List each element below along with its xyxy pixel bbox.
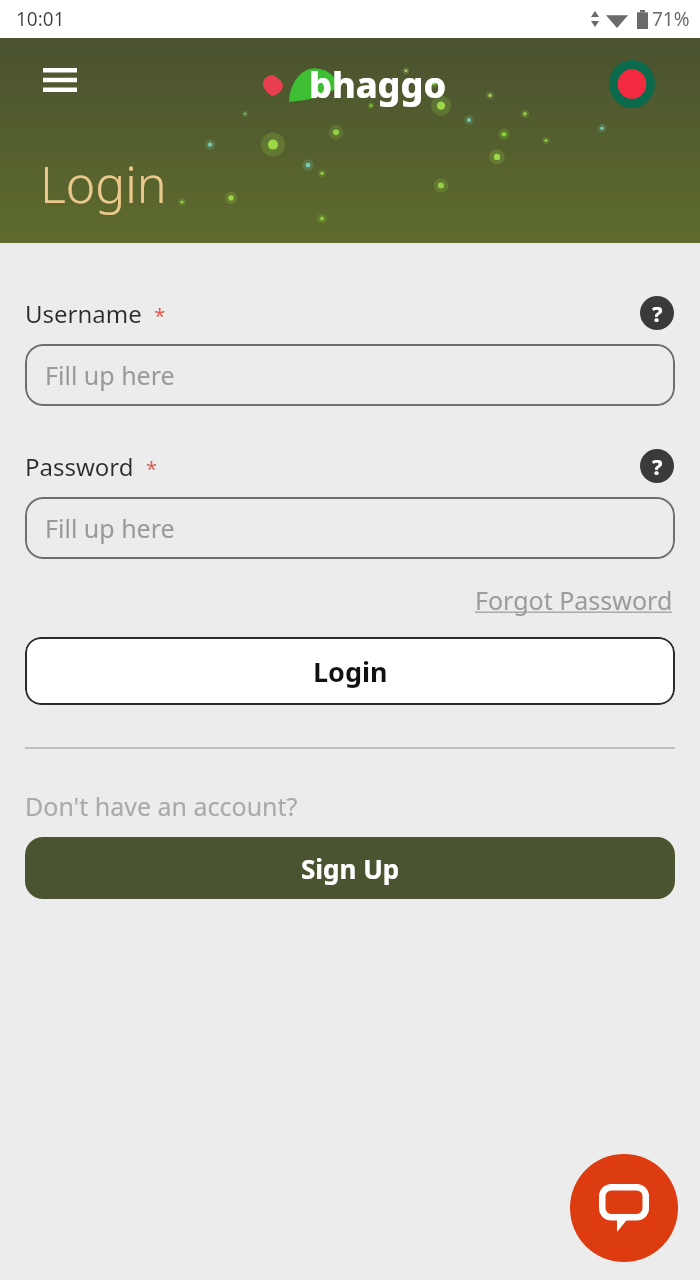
button[interactable]: Language (606, 58, 658, 110)
staticText: bhaggo (309, 60, 447, 109)
staticText: Sign Up (301, 851, 400, 886)
staticText: ? (652, 298, 663, 328)
staticText: 71% (652, 6, 690, 32)
staticText: Forgot Password (475, 583, 673, 617)
staticText: Fill up here (45, 511, 175, 545)
button[interactable]: Help (639, 448, 675, 484)
button[interactable]: Forgot Password (473, 579, 675, 621)
staticText: Username * (25, 297, 166, 330)
button[interactable]: Fill up here (25, 344, 675, 406)
button[interactable]: Fill up here (25, 497, 675, 559)
button[interactable]: Chat support (570, 1154, 678, 1262)
button[interactable]: Login (25, 637, 675, 705)
button[interactable]: Help (639, 295, 675, 331)
staticText: Fill up here (45, 358, 175, 392)
staticText: Don't have an account? (25, 789, 298, 823)
staticText: 10:01 (16, 6, 65, 32)
staticText: ? (652, 451, 663, 481)
staticText: Password * (25, 450, 158, 483)
button[interactable]: bhaggo (253, 60, 447, 109)
staticText: Login (313, 653, 388, 690)
button[interactable]: Sign Up (25, 837, 675, 899)
staticText: Login (40, 150, 167, 218)
button[interactable]: Menu (30, 56, 90, 104)
